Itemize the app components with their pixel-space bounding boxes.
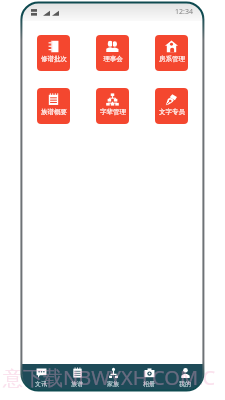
button[interactable]: 相册 (131, 364, 167, 390)
button[interactable]: 房系管理 (155, 35, 188, 71)
staticText: 字辈管理 (100, 108, 126, 116)
staticText: 12:34 (175, 7, 193, 17)
staticText: 房系管理 (159, 55, 185, 63)
staticText: 文讯 (35, 380, 47, 388)
button[interactable]: 理事会 (96, 35, 129, 71)
staticText: 意下载NBWYXH.COM.C (3, 364, 216, 391)
staticText: 修谱批次 (41, 55, 67, 63)
button[interactable]: 家族 (95, 364, 131, 390)
button[interactable]: 我的 (167, 364, 203, 390)
button[interactable]: 字辈管理 (96, 88, 129, 124)
staticText: 相册 (143, 380, 155, 388)
button[interactable]: 修谱批次 (37, 35, 70, 71)
staticText: 家族 (107, 380, 119, 388)
button[interactable]: 文字专员 (155, 88, 188, 124)
staticText: 文字专员 (159, 108, 185, 116)
button[interactable]: 文讯 (22, 364, 59, 390)
staticText: 理事会 (103, 55, 123, 63)
staticText: 我的 (179, 380, 191, 388)
staticText: 族谱 (71, 380, 83, 388)
staticText: 族谱概要 (41, 108, 67, 116)
button[interactable]: 族谱概要 (37, 88, 70, 124)
button[interactable]: 族谱 (59, 364, 95, 390)
